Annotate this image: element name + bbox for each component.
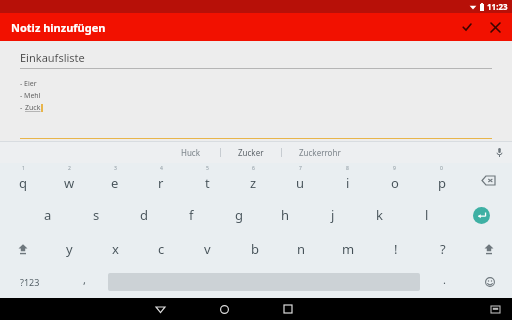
staticText: o (391, 174, 399, 192)
staticText: p (438, 174, 446, 192)
staticText: t (205, 174, 210, 192)
button[interactable]: Umschalt (466, 232, 512, 266)
staticText: z (250, 174, 257, 192)
button[interactable]: 2 (46, 163, 92, 198)
staticText: g (235, 206, 243, 224)
staticText: c (158, 240, 165, 258)
staticText: i (346, 174, 350, 192)
staticText: u (296, 174, 305, 192)
button[interactable]: 8 (324, 163, 371, 198)
button[interactable]: x (92, 232, 138, 266)
staticText: 3 (114, 165, 117, 172)
staticText: m (342, 240, 355, 258)
staticText: h (281, 206, 290, 224)
staticText: y (66, 240, 73, 258)
staticText: a (44, 206, 52, 224)
staticText: e (111, 174, 119, 192)
staticText: w (64, 174, 75, 192)
staticText: n (297, 240, 306, 258)
staticText: ?123 (20, 276, 40, 288)
staticText: - Mehl (20, 91, 41, 101)
staticText: , (83, 272, 86, 287)
staticText: Notiz hinzufügen (11, 20, 106, 35)
staticText: d (140, 206, 148, 224)
button[interactable]: j (309, 198, 356, 232)
button[interactable]: Zucker (221, 141, 281, 163)
button[interactable]: m (325, 232, 372, 266)
button[interactable]: Tastatur wechseln (484, 298, 506, 320)
staticText: b (251, 240, 259, 258)
staticText: 8 (346, 165, 349, 172)
staticText: - (20, 103, 25, 113)
button[interactable]: y (46, 232, 92, 266)
staticText: ? (440, 240, 446, 258)
staticText: 5 (206, 165, 209, 172)
button[interactable]: Eingabe (450, 198, 512, 232)
button[interactable]: ?123 (0, 266, 60, 298)
staticText: . (443, 272, 446, 287)
staticText: ! (394, 240, 398, 258)
staticText: 0 (440, 165, 443, 172)
staticText: r (158, 174, 164, 192)
button[interactable]: , (60, 266, 108, 298)
staticText: 6 (252, 165, 255, 172)
button[interactable]: Umschalt (0, 232, 46, 266)
button[interactable]: ? (419, 232, 466, 266)
staticText: q (19, 174, 27, 192)
staticText: 1 (22, 165, 25, 172)
staticText: j (331, 206, 335, 224)
button[interactable]: 7 (277, 163, 324, 198)
staticText: Zuck (25, 103, 41, 113)
button[interactable]: Einkaufsliste (20, 50, 85, 65)
button[interactable]: 3 (92, 163, 138, 198)
button[interactable]: 1 (0, 163, 46, 198)
button[interactable]: 6 (230, 163, 277, 198)
button[interactable]: 0 (418, 163, 465, 198)
button[interactable]: 9 (371, 163, 418, 198)
staticText: x (112, 240, 119, 258)
staticText: - Eier (20, 79, 37, 89)
button[interactable]: l (403, 198, 450, 232)
button[interactable]: 4 (138, 163, 184, 198)
button[interactable]: Emoji (468, 266, 512, 298)
button[interactable]: Speichern (456, 16, 478, 38)
staticText: 4 (160, 165, 163, 172)
staticText: 2 (68, 165, 71, 172)
staticText: 7 (299, 165, 302, 172)
button[interactable]: k (356, 198, 403, 232)
button[interactable]: v (184, 232, 231, 266)
staticText: 11:23 (487, 1, 508, 12)
button[interactable]: ! (372, 232, 419, 266)
staticText: s (93, 206, 100, 224)
button[interactable]: Übersicht (273, 298, 303, 320)
staticText: l (425, 206, 429, 224)
button[interactable]: d (120, 198, 168, 232)
button[interactable]: Zuckerrohr (282, 141, 358, 163)
button[interactable]: Spracheingabe (486, 141, 512, 163)
button[interactable]: Löschen (465, 163, 512, 198)
button[interactable]: c (138, 232, 184, 266)
staticText: Zucker (238, 147, 264, 158)
staticText: k (376, 206, 383, 224)
button[interactable]: Zurück (145, 298, 175, 320)
button[interactable]: h (262, 198, 309, 232)
button[interactable]: f (168, 198, 215, 232)
button[interactable]: b (231, 232, 278, 266)
button[interactable]: Abbrechen (484, 16, 506, 38)
staticText: Huck (181, 147, 200, 158)
staticText: 9 (393, 165, 396, 172)
staticText: Zuckerrohr (299, 147, 341, 158)
button[interactable]: . (420, 266, 468, 298)
button[interactable]: Startbildschirm (209, 298, 239, 320)
button[interactable]: Huck (160, 141, 220, 163)
button[interactable]: a (24, 198, 72, 232)
button[interactable]: 5 (184, 163, 230, 198)
button[interactable]: n (278, 232, 325, 266)
staticText: f (189, 206, 194, 224)
staticText: v (204, 240, 211, 258)
button[interactable]: s (72, 198, 120, 232)
button[interactable]: g (215, 198, 262, 232)
